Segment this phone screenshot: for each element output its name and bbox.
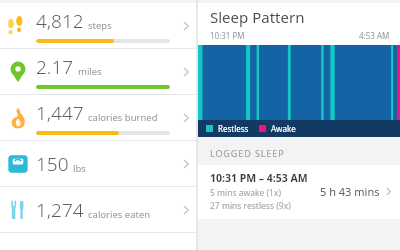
staticText: 5 mins awake (1x) bbox=[210, 187, 281, 199]
staticText: Awake bbox=[271, 123, 296, 134]
staticText: steps bbox=[88, 19, 112, 32]
staticText: lbs bbox=[73, 162, 86, 175]
staticText: 10:31 PM – 4:53 AM bbox=[210, 171, 308, 185]
other: calories burned bbox=[176, 95, 196, 140]
staticText: 27 mins restless (9x) bbox=[210, 200, 291, 212]
staticText: 4:53 AM bbox=[359, 30, 390, 41]
button[interactable]: 4,812 bbox=[0, 3, 196, 48]
staticText: 10:31 PM bbox=[210, 30, 245, 41]
other: miles bbox=[176, 49, 196, 94]
staticText: 4,812 bbox=[36, 8, 84, 34]
staticText: 5 h 43 mins bbox=[320, 184, 380, 199]
staticText: 1,447 bbox=[36, 100, 84, 126]
staticText: Restless bbox=[218, 123, 249, 134]
button[interactable]: 2.17 bbox=[0, 49, 196, 94]
button[interactable]: 1,447 bbox=[0, 95, 196, 140]
staticText: 1,274 bbox=[36, 197, 84, 223]
staticText: 2.17 bbox=[36, 54, 74, 80]
staticText: calories burned bbox=[88, 111, 158, 124]
button[interactable]: 150 bbox=[0, 141, 196, 186]
staticText: 150 bbox=[36, 151, 69, 177]
button[interactable]: 10:31 PM – 4:53 AM bbox=[210, 171, 392, 212]
other: steps bbox=[176, 3, 196, 48]
staticText: calories eaten bbox=[88, 208, 151, 221]
staticText: LOGGED SLEEP bbox=[210, 147, 285, 159]
other: lbs bbox=[176, 141, 196, 186]
other: calories eaten bbox=[176, 187, 196, 232]
staticText: miles bbox=[78, 65, 102, 78]
staticText: Sleep Pattern bbox=[210, 7, 305, 27]
button[interactable]: 1,274 bbox=[0, 187, 196, 232]
